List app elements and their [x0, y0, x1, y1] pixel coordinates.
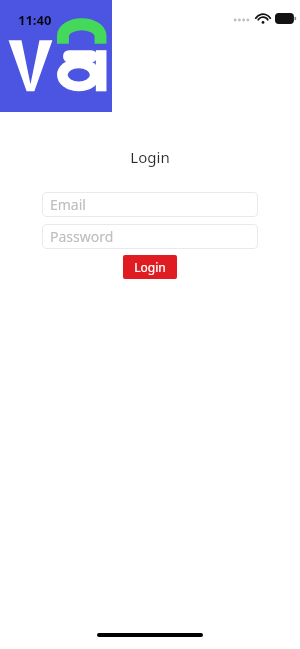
staticText: Email	[50, 195, 86, 214]
button[interactable]: Password	[42, 224, 258, 249]
staticText: Login	[130, 147, 170, 167]
staticText: Login	[134, 259, 166, 275]
button[interactable]: Email	[42, 192, 258, 217]
staticText: Password	[50, 227, 114, 246]
other: Status icons	[233, 13, 297, 24]
staticText: 11:40	[18, 11, 52, 29]
button[interactable]: Login	[123, 255, 177, 279]
